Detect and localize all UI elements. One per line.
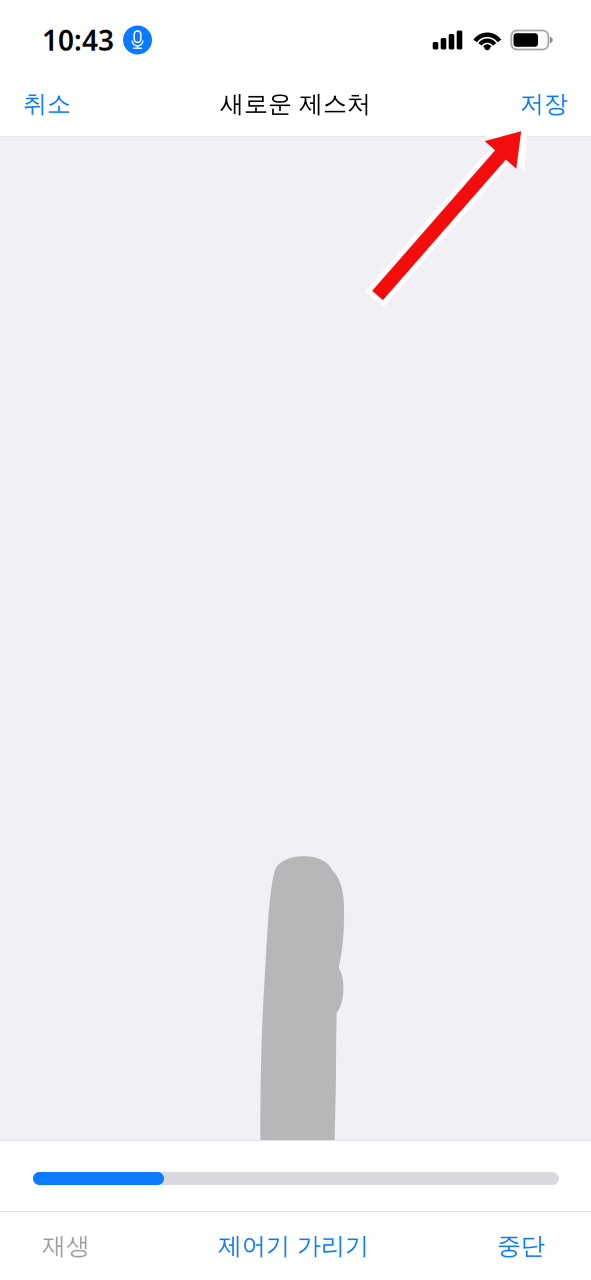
staticText: 새로운 제스처: [220, 89, 371, 119]
staticText: 저장: [520, 89, 568, 119]
button[interactable]: 취소: [0, 72, 94, 136]
button[interactable]: 저장: [497, 72, 591, 136]
button[interactable]: 재생: [0, 1212, 110, 1280]
button[interactable]: 중단: [477, 1212, 591, 1280]
staticText: 재생: [42, 1231, 90, 1261]
button[interactable]: 제어기 가리기: [218, 1212, 369, 1280]
staticText: 제어기 가리기: [218, 1231, 369, 1261]
staticText: 취소: [23, 89, 71, 119]
staticText: 10:43: [42, 21, 114, 59]
staticText: 중단: [497, 1231, 545, 1261]
